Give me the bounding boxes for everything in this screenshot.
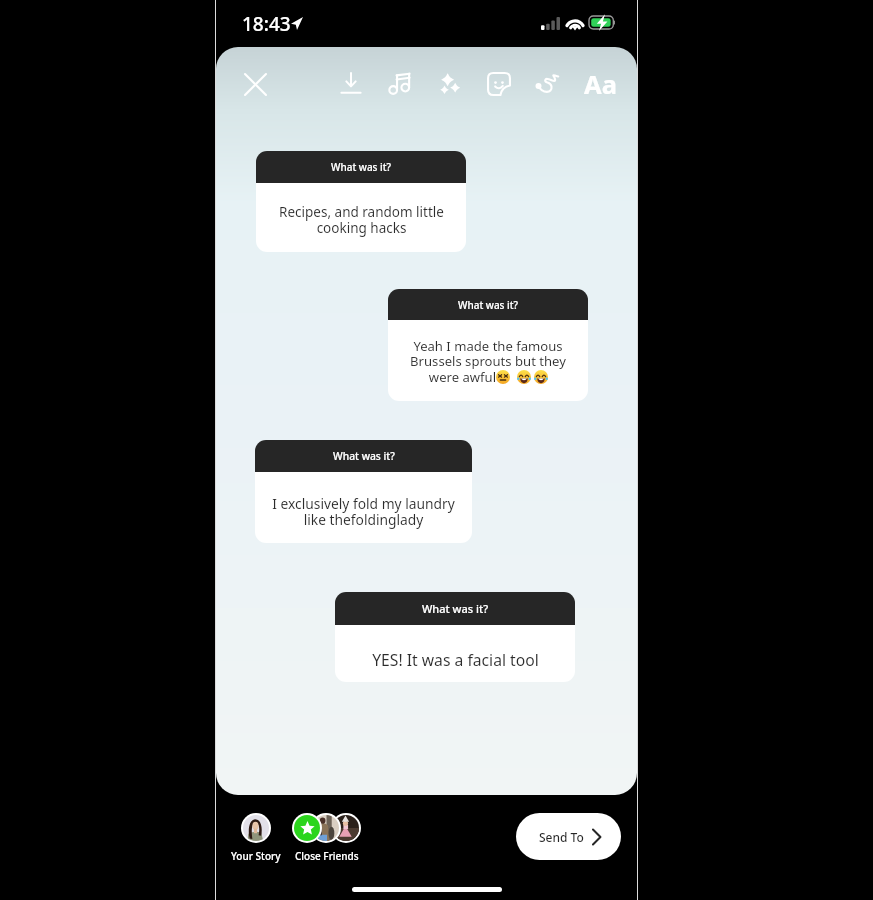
button[interactable]: Text [582, 66, 618, 102]
button[interactable]: Save [333, 66, 369, 102]
staticText: What was it? [422, 601, 489, 616]
staticText: 18:43 [242, 11, 291, 37]
staticText: YES! It was a facial tool [372, 649, 539, 670]
button[interactable]: Draw [529, 66, 565, 102]
staticText: What was it? [458, 298, 519, 312]
button[interactable]: Sticker [481, 66, 517, 102]
staticText: Recipes, and random little cooking hacks [279, 203, 444, 237]
button[interactable]: Close [237, 66, 273, 102]
button[interactable]: Effects [432, 66, 468, 102]
button[interactable]: Close Friends [292, 813, 361, 863]
staticText: What was it? [333, 449, 395, 463]
button[interactable]: What was it? [388, 289, 588, 401]
staticText: Send To [539, 829, 584, 845]
button[interactable]: Send To [516, 813, 621, 860]
staticText: What was it? [331, 160, 392, 174]
button[interactable]: Your Story [215, 813, 296, 863]
button[interactable]: What was it? [255, 440, 472, 543]
staticText: Close Friends [295, 849, 359, 863]
staticText: Your Story [231, 849, 281, 863]
staticText: Aa [584, 67, 617, 102]
button[interactable]: What was it? [256, 151, 466, 252]
staticText: I exclusively fold my laundry like thefo… [272, 494, 455, 529]
button[interactable]: What was it? [335, 592, 575, 682]
button[interactable]: Music [383, 66, 419, 102]
staticText: Yeah I made the famous Brussels sprouts … [410, 337, 566, 386]
